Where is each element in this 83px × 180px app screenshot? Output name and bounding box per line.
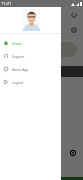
staticText: About App	[12, 67, 29, 71]
button[interactable]: Logout	[0, 75, 61, 88]
staticText: 11:21	[1, 1, 12, 6]
button[interactable]: Refresh	[70, 11, 78, 19]
button[interactable]: My location	[68, 148, 78, 158]
button[interactable]: Support	[0, 49, 61, 62]
staticText: Support	[12, 54, 25, 58]
button[interactable]: About App	[0, 62, 61, 75]
staticText: Home	[12, 41, 22, 45]
staticText: Logout	[12, 80, 23, 84]
button[interactable]: Map type	[70, 26, 78, 34]
button[interactable]: Home	[0, 36, 61, 49]
